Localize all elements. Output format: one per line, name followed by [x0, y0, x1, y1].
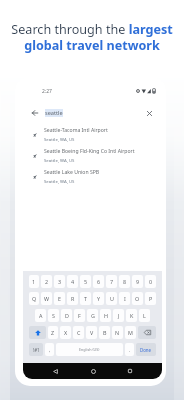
- staticText: 0: [149, 278, 153, 285]
- staticText: S: [52, 312, 55, 319]
- button[interactable]: ,: [45, 343, 54, 356]
- staticText: .: [129, 347, 131, 353]
- button[interactable]: J: [113, 309, 124, 322]
- button[interactable]: Backspace: [138, 326, 156, 339]
- button[interactable]: S: [48, 309, 59, 322]
- button[interactable]: C: [73, 326, 84, 339]
- staticText: Seattle, WA, US: [44, 136, 75, 142]
- button[interactable]: 0: [145, 275, 156, 288]
- staticText: O: [135, 295, 140, 302]
- staticText: H: [104, 312, 108, 319]
- button[interactable]: O: [132, 292, 143, 305]
- staticText: 2: [45, 278, 49, 285]
- staticText: Seattle-Tacoma Intl Airport: [44, 127, 108, 134]
- button[interactable]: Z: [48, 326, 58, 339]
- button[interactable]: 4: [67, 275, 78, 288]
- button[interactable]: Done: [136, 343, 156, 356]
- button[interactable]: E: [54, 292, 65, 305]
- button[interactable]: Back: [49, 365, 61, 377]
- button[interactable]: 6: [93, 275, 104, 288]
- staticText: B: [103, 329, 107, 336]
- staticText: M: [128, 329, 133, 336]
- button[interactable]: U: [106, 292, 117, 305]
- button[interactable]: P: [145, 292, 156, 305]
- staticText: A: [39, 312, 43, 319]
- button[interactable]: D: [61, 309, 72, 322]
- button[interactable]: A: [35, 309, 46, 322]
- button[interactable]: N: [112, 326, 123, 339]
- staticText: Search through the largest global travel…: [5, 21, 179, 54]
- staticText: Seattle Boeing Fld-King Co Intl Airport: [44, 148, 135, 155]
- button[interactable]: 9: [132, 275, 143, 288]
- button[interactable]: 7: [106, 275, 117, 288]
- button[interactable]: Shift: [29, 326, 46, 339]
- staticText: 6: [97, 278, 101, 285]
- button[interactable]: Clear query: [143, 107, 155, 119]
- button[interactable]: T: [80, 292, 91, 305]
- staticText: K: [130, 312, 134, 319]
- staticText: F: [78, 312, 81, 319]
- staticText: seattle: [45, 109, 63, 117]
- button[interactable]: Seattle Lake Union SPB: [23, 166, 162, 187]
- button[interactable]: Q: [29, 292, 39, 305]
- staticText: 3: [58, 278, 62, 285]
- staticText: L: [143, 312, 146, 319]
- staticText: J: [118, 312, 120, 319]
- staticText: C: [77, 329, 81, 336]
- staticText: 7: [110, 278, 114, 285]
- staticText: N: [115, 329, 120, 336]
- button[interactable]: Y: [93, 292, 104, 305]
- staticText: V: [90, 329, 94, 336]
- button[interactable]: Home: [87, 365, 99, 377]
- button[interactable]: 3: [54, 275, 65, 288]
- staticText: T: [84, 295, 87, 302]
- staticText: Done: [140, 347, 152, 353]
- staticText: Z: [51, 329, 55, 336]
- staticText: English (US): [79, 347, 100, 352]
- button[interactable]: 2: [41, 275, 52, 288]
- staticText: R: [71, 295, 75, 302]
- button[interactable]: Seattle-Tacoma Intl Airport: [23, 124, 162, 145]
- button[interactable]: X: [60, 326, 71, 339]
- staticText: 4: [71, 278, 75, 285]
- staticText: Seattle, WA, US: [44, 157, 75, 163]
- button[interactable]: B: [99, 326, 110, 339]
- button[interactable]: I: [119, 292, 130, 305]
- button[interactable]: L: [139, 309, 150, 322]
- button[interactable]: K: [126, 309, 137, 322]
- button[interactable]: 8: [119, 275, 130, 288]
- staticText: Seattle, WA, US: [44, 178, 75, 184]
- button[interactable]: Recent apps: [124, 365, 136, 377]
- staticText: Seattle Lake Union SPB: [44, 169, 100, 176]
- staticText: ,: [49, 347, 51, 353]
- staticText: P: [149, 295, 153, 302]
- staticText: 9: [136, 278, 140, 285]
- button[interactable]: 1: [29, 275, 39, 288]
- button[interactable]: M: [125, 326, 136, 339]
- button[interactable]: !#1: [29, 343, 43, 356]
- button[interactable]: 5: [80, 275, 91, 288]
- button[interactable]: .: [125, 343, 134, 356]
- staticText: !#1: [33, 347, 40, 353]
- staticText: I: [124, 295, 126, 302]
- staticText: Y: [97, 295, 101, 302]
- button[interactable]: F: [74, 309, 85, 322]
- button[interactable]: V: [86, 326, 97, 339]
- button[interactable]: W: [41, 292, 52, 305]
- staticText: D: [65, 312, 69, 319]
- staticText: E: [58, 295, 61, 302]
- button[interactable]: R: [67, 292, 78, 305]
- button[interactable]: H: [100, 309, 111, 322]
- staticText: W: [44, 295, 50, 302]
- staticText: U: [110, 295, 114, 302]
- staticText: 2:27: [42, 88, 52, 95]
- button[interactable]: English (US): [56, 343, 123, 356]
- staticText: 1: [32, 278, 36, 285]
- staticText: G: [91, 312, 95, 319]
- staticText: 5: [84, 278, 88, 285]
- button[interactable]: G: [87, 309, 98, 322]
- staticText: X: [64, 329, 68, 336]
- staticText: Q: [32, 295, 37, 302]
- button[interactable]: Back: [29, 107, 41, 119]
- button[interactable]: Seattle Boeing Fld-King Co Intl Airport: [23, 145, 162, 166]
